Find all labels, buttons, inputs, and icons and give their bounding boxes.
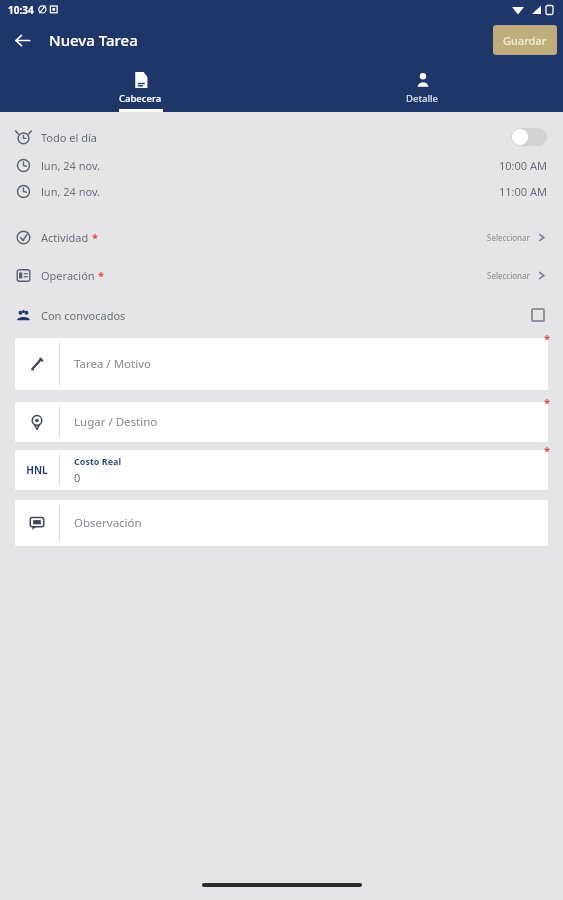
button[interactable]: Observación bbox=[15, 500, 548, 546]
staticText: Todo el día bbox=[41, 130, 97, 145]
staticText: Seleccionar bbox=[487, 232, 530, 243]
staticText: lun, 24 nov. bbox=[41, 158, 101, 173]
button[interactable]: Guardar bbox=[493, 25, 557, 55]
button[interactable]: HNL bbox=[15, 450, 548, 490]
staticText: 10:00 AM bbox=[499, 158, 547, 173]
staticText: Actividad bbox=[41, 230, 89, 245]
button[interactable]: Con convocados bbox=[529, 306, 547, 324]
button[interactable]: Tarea / Motivo bbox=[15, 338, 548, 390]
button[interactable]: Todo el día bbox=[0, 122, 563, 152]
button[interactable]: Detalle bbox=[281, 60, 563, 112]
staticText: Seleccionar bbox=[487, 270, 530, 281]
staticText: Detalle bbox=[406, 92, 439, 105]
staticText: Con convocados bbox=[41, 308, 126, 323]
button[interactable]: lun, 24 nov. bbox=[0, 152, 563, 178]
staticText: Nueva Tarea bbox=[49, 30, 138, 50]
button[interactable]: Todo el día bbox=[511, 128, 547, 146]
staticText: HNL bbox=[26, 463, 48, 477]
staticText: Guardar bbox=[503, 33, 547, 48]
staticText: * bbox=[544, 443, 550, 458]
staticText: * bbox=[92, 230, 98, 245]
staticText: * bbox=[544, 331, 550, 346]
staticText: Observación bbox=[74, 515, 142, 531]
staticText: Costo Real bbox=[74, 455, 122, 467]
staticText: * bbox=[544, 395, 550, 410]
staticText: Cabecera bbox=[119, 92, 162, 105]
staticText: 11:00 AM bbox=[499, 184, 547, 199]
button[interactable]: Back bbox=[8, 26, 36, 54]
staticText: lun, 24 nov. bbox=[41, 184, 101, 199]
button[interactable]: Actividad bbox=[0, 222, 563, 252]
button[interactable]: lun, 24 nov. bbox=[0, 178, 563, 204]
button[interactable]: Con convocados bbox=[0, 300, 563, 330]
button[interactable]: Cabecera bbox=[0, 60, 281, 112]
button[interactable]: Operación bbox=[0, 260, 563, 290]
staticText: 0 bbox=[74, 470, 81, 485]
staticText: Operación bbox=[41, 268, 95, 283]
staticText: 10:34 bbox=[8, 3, 34, 17]
staticText: Lugar / Destino bbox=[74, 414, 158, 430]
staticText: * bbox=[98, 268, 104, 283]
staticText: Tarea / Motivo bbox=[74, 356, 151, 372]
button[interactable]: Lugar / Destino bbox=[15, 402, 548, 442]
